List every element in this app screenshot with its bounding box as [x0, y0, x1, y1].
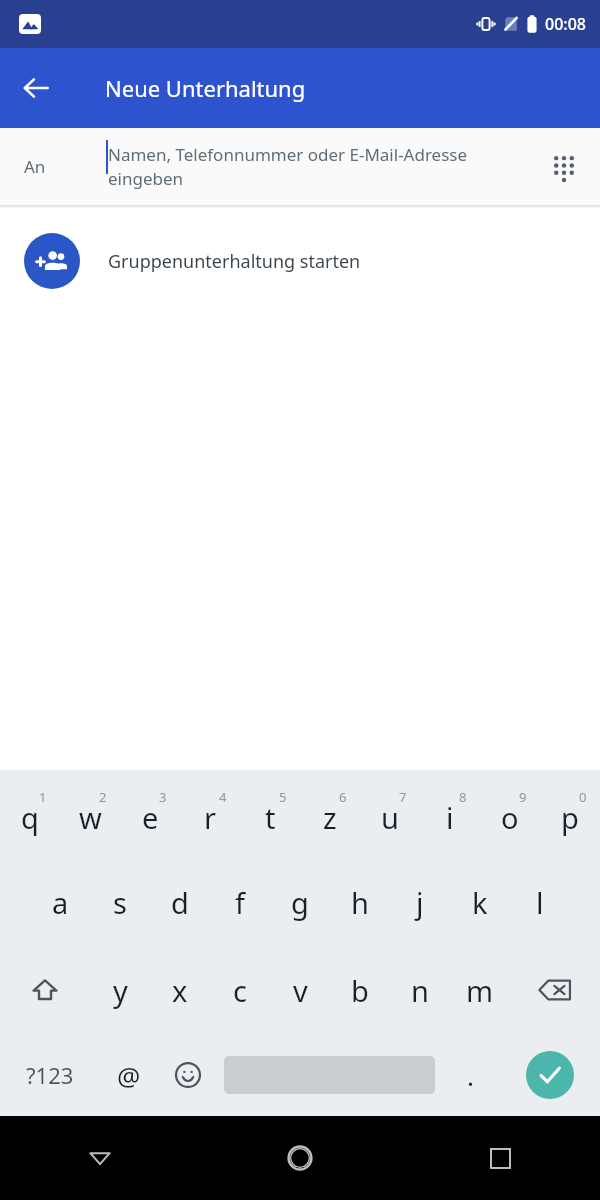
staticText: w	[79, 798, 102, 837]
staticText: g	[291, 883, 309, 922]
staticText: Gruppenunterhaltung starten	[108, 249, 361, 274]
button[interactable]: 5	[240, 770, 300, 858]
button[interactable]: d	[150, 858, 210, 946]
button[interactable]: Emoji	[158, 1034, 217, 1116]
button[interactable]: a	[30, 858, 90, 946]
staticText: l	[536, 883, 544, 922]
staticText: j	[416, 883, 424, 922]
button[interactable]: s	[90, 858, 150, 946]
staticText: k	[472, 883, 488, 922]
staticText: ?123	[26, 1060, 74, 1090]
staticText: 00:08	[545, 13, 586, 35]
staticText: p	[561, 798, 579, 837]
staticText: 9	[519, 788, 527, 806]
staticText: 8	[459, 788, 467, 806]
staticText: a	[52, 883, 69, 922]
staticText: r	[204, 798, 216, 837]
button[interactable]: x	[150, 946, 210, 1034]
button[interactable]: Home	[200, 1116, 400, 1200]
staticText: i	[446, 798, 454, 837]
button[interactable]: Back	[0, 1116, 200, 1200]
button[interactable]: 2	[60, 770, 120, 858]
button[interactable]: Recents	[400, 1116, 600, 1200]
button[interactable]: b	[330, 946, 390, 1034]
button[interactable]: Dialpad	[540, 143, 588, 191]
button[interactable]: 8	[420, 770, 480, 858]
button[interactable]: v	[270, 946, 330, 1034]
staticText: .	[467, 1058, 474, 1093]
button[interactable]: .	[441, 1034, 500, 1116]
button[interactable]: 9	[480, 770, 540, 858]
button[interactable]: j	[390, 858, 450, 946]
staticText: z	[323, 798, 337, 837]
button[interactable]: h	[330, 858, 390, 946]
staticText: d	[171, 883, 189, 922]
button[interactable]: c	[210, 946, 270, 1034]
staticText: 0	[579, 788, 587, 806]
staticText: u	[381, 798, 399, 837]
button[interactable]: 3	[120, 770, 180, 858]
staticText: s	[113, 883, 127, 922]
button[interactable]: k	[450, 858, 510, 946]
staticText: y	[113, 971, 128, 1010]
button[interactable]: g	[270, 858, 330, 946]
button[interactable]: Backspace	[510, 946, 600, 1034]
staticText: h	[351, 883, 369, 922]
staticText: c	[233, 971, 247, 1010]
staticText: o	[501, 798, 519, 837]
button[interactable]: 4	[180, 770, 240, 858]
staticText: 3	[159, 788, 167, 806]
staticText: t	[265, 798, 276, 837]
button[interactable]: @	[99, 1034, 158, 1116]
staticText: Namen, Telefonnummer oder E-Mail-Adresse…	[108, 143, 532, 190]
staticText: 6	[339, 788, 347, 806]
staticText: x	[172, 971, 188, 1010]
button[interactable]: y	[90, 946, 150, 1034]
staticText: n	[411, 971, 429, 1010]
button[interactable]: Back	[8, 60, 64, 116]
button[interactable]: Space	[217, 1034, 441, 1116]
button[interactable]: Done	[500, 1034, 600, 1116]
button[interactable]: 7	[360, 770, 420, 858]
button[interactable]: 1	[0, 770, 60, 858]
staticText: f	[235, 883, 245, 922]
staticText: 7	[399, 788, 407, 806]
button[interactable]: Shift	[0, 946, 90, 1034]
button[interactable]: f	[210, 858, 270, 946]
button[interactable]: Gruppenunterhaltung starten	[0, 223, 600, 299]
staticText: m	[466, 971, 494, 1010]
button[interactable]: 0	[540, 770, 600, 858]
staticText: b	[351, 971, 369, 1010]
button[interactable]: l	[510, 858, 570, 946]
staticText: 2	[99, 788, 107, 806]
staticText: @	[117, 1058, 141, 1093]
staticText: q	[21, 798, 39, 837]
staticText: v	[293, 971, 308, 1010]
staticText: 1	[39, 788, 47, 806]
button[interactable]: n	[390, 946, 450, 1034]
button[interactable]: ?123	[0, 1034, 99, 1116]
staticText: 4	[219, 788, 227, 806]
button[interactable]: m	[450, 946, 510, 1034]
staticText: An	[24, 155, 46, 178]
staticText: e	[142, 798, 159, 837]
staticText: 5	[279, 788, 287, 806]
button[interactable]: 6	[300, 770, 360, 858]
staticText: Neue Unterhaltung	[105, 73, 306, 103]
